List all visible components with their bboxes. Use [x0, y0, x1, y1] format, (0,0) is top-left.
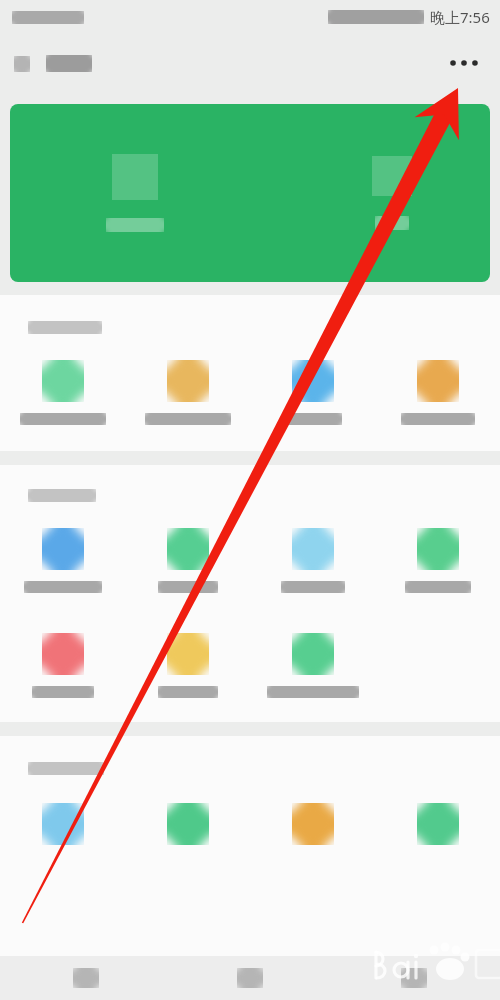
button[interactable] [106, 154, 164, 232]
button[interactable]: Tab 2 [222, 958, 278, 998]
button[interactable] [158, 633, 218, 698]
button[interactable] [267, 633, 359, 698]
button[interactable] [292, 803, 334, 845]
button[interactable]: Back [14, 55, 92, 72]
button[interactable] [284, 360, 342, 425]
button[interactable] [20, 360, 106, 425]
button[interactable] [405, 528, 471, 593]
button[interactable] [10, 104, 490, 282]
button[interactable] [158, 528, 218, 593]
button[interactable]: Tab 3 [386, 958, 442, 998]
button[interactable]: Tab 1 [58, 958, 114, 998]
staticText: 晚上7:56 [430, 7, 490, 27]
button[interactable]: More options [442, 41, 486, 85]
button[interactable] [167, 803, 209, 845]
button[interactable] [145, 360, 231, 425]
button[interactable] [24, 528, 102, 593]
button[interactable] [401, 360, 475, 425]
button[interactable] [417, 803, 459, 845]
button[interactable] [42, 803, 84, 845]
button[interactable] [281, 528, 345, 593]
button[interactable] [32, 633, 94, 698]
button[interactable] [372, 156, 412, 230]
